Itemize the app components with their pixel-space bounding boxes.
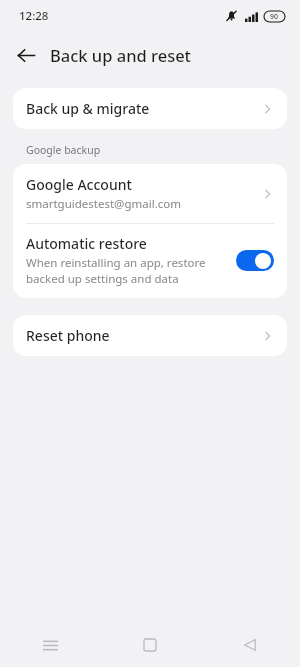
staticText: Back up and reset [50,44,191,66]
staticText: When reinstalling an app, restore backed… [26,255,206,286]
button[interactable]: Reset phone [13,315,287,356]
staticText: Back up & migrate [26,99,260,118]
staticText: 12:28 [19,8,49,24]
staticText: Automatic restore [26,234,147,253]
button[interactable]: Automatic restore toggle [236,250,274,271]
button[interactable]: Back up & migrate [13,88,287,129]
staticText: Google backup [26,143,101,157]
button[interactable]: Automatic restore [13,224,287,298]
staticText: 90 [270,12,279,22]
button[interactable]: Google Account [13,164,287,223]
staticText: smartguidestest@gmail.com [26,196,181,212]
button[interactable]: Recent apps [24,625,76,665]
staticText: Reset phone [26,326,260,345]
button[interactable]: Back [224,625,276,665]
staticText: Google Account [26,175,132,194]
button[interactable]: Home [124,625,176,665]
button[interactable]: Back [8,37,44,73]
